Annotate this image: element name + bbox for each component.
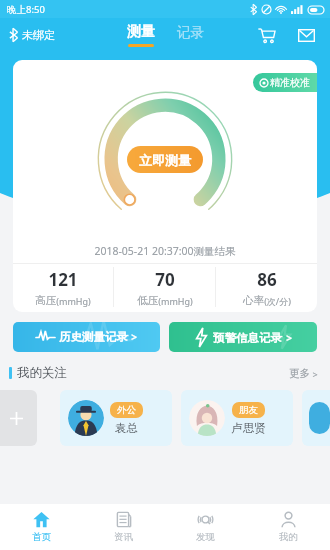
button[interactable] — [302, 390, 330, 446]
button[interactable]: 精准校准 — [253, 73, 317, 92]
staticText: 精准校准 — [270, 76, 310, 89]
staticText: 心率 — [243, 294, 264, 307]
staticText: 低压 — [137, 294, 158, 307]
button[interactable]: Messages — [293, 22, 319, 48]
staticText: 我的关注 — [17, 365, 67, 381]
button[interactable]: 121 — [13, 264, 113, 310]
button[interactable]: 预警信息记录 — [169, 322, 317, 352]
staticText: 记录 — [177, 24, 204, 41]
staticText: 121 — [48, 268, 78, 291]
staticText: > — [312, 368, 318, 380]
staticText: 发现 — [196, 531, 215, 543]
staticText: 朋友 — [239, 404, 258, 416]
button[interactable]: 测量 — [123, 23, 159, 47]
button[interactable]: 发现 — [164, 504, 247, 550]
button[interactable]: 未绑定 — [7, 26, 57, 44]
staticText: 首页 — [32, 531, 51, 543]
staticText: 晚上8:50 — [7, 3, 45, 16]
button[interactable]: 立即测量 — [127, 146, 203, 173]
staticText: 测量 — [127, 23, 155, 41]
button[interactable]: 朋友 — [181, 390, 293, 446]
staticText: 历史测量记录 — [59, 330, 128, 344]
button[interactable]: 更多 — [287, 365, 320, 382]
staticText: 2018-05-21 20:37:00测量结果 — [94, 244, 236, 258]
staticText: > — [286, 331, 292, 345]
staticText: 86 — [257, 268, 277, 291]
staticText: > — [131, 330, 137, 344]
button[interactable]: 外公 — [60, 390, 172, 446]
staticText: (mmHg) — [56, 295, 91, 307]
staticText: 70 — [155, 268, 175, 291]
button[interactable]: 首页 — [0, 504, 82, 550]
staticText: 资讯 — [114, 531, 133, 543]
staticText: (次/分) — [264, 295, 291, 307]
staticText: 我的 — [279, 531, 298, 543]
button[interactable]: 资讯 — [82, 504, 164, 550]
staticText: 预警信息记录 — [213, 331, 282, 345]
staticText: 未绑定 — [22, 28, 55, 42]
staticText: 袁总 — [115, 421, 138, 435]
staticText: 立即测量 — [139, 152, 191, 168]
staticText: 更多 — [289, 367, 310, 380]
staticText: (mmHg) — [158, 295, 193, 307]
button[interactable]: 记录 — [173, 24, 208, 47]
button[interactable]: Shopping cart — [253, 22, 279, 48]
staticText: 卢思贤 — [231, 421, 266, 435]
button[interactable]: 历史测量记录 — [13, 322, 160, 352]
staticText: 外公 — [117, 404, 136, 416]
button[interactable]: 70 — [114, 264, 215, 310]
button[interactable]: 86 — [216, 264, 317, 310]
staticText: 高压 — [35, 294, 56, 307]
button[interactable]: Add contact — [0, 390, 37, 446]
button[interactable]: 我的 — [247, 504, 330, 550]
